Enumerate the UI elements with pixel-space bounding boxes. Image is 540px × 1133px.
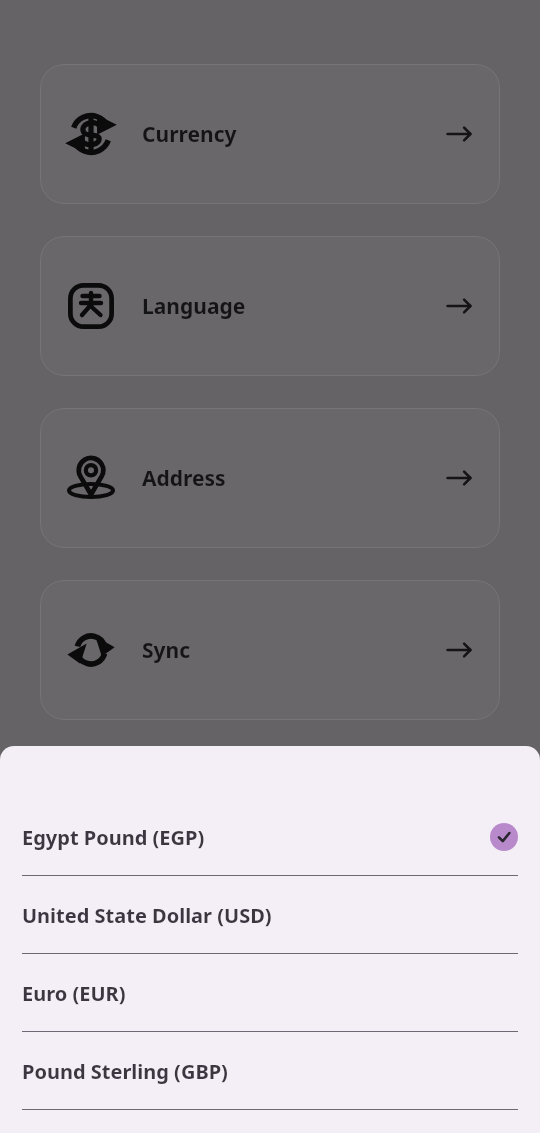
button[interactable]: Pound Sterling (GBP) [0, 1032, 540, 1110]
staticText: Address [142, 464, 226, 493]
other: Selected [490, 823, 518, 851]
staticText: Upload [142, 808, 217, 837]
button[interactable]: Currency [40, 64, 500, 204]
staticText: Pound Sterling (GBP) [22, 1058, 228, 1085]
staticText: Egypt Pound (EGP) [22, 824, 205, 851]
button[interactable]: Upload [40, 752, 500, 892]
button[interactable]: United State Dollar (USD) [0, 876, 540, 954]
button[interactable]: Egypt Pound (EGP) [0, 798, 540, 876]
button[interactable]: Address [40, 408, 500, 548]
staticText: United State Dollar (USD) [22, 902, 272, 929]
staticText: Euro (EUR) [22, 980, 126, 1007]
button[interactable]: Sync [40, 580, 500, 720]
button[interactable]: Language [40, 236, 500, 376]
staticText: Currency [142, 120, 237, 149]
staticText: Language [142, 292, 246, 321]
button[interactable]: Euro (EUR) [0, 954, 540, 1032]
staticText: Sync [142, 636, 191, 665]
